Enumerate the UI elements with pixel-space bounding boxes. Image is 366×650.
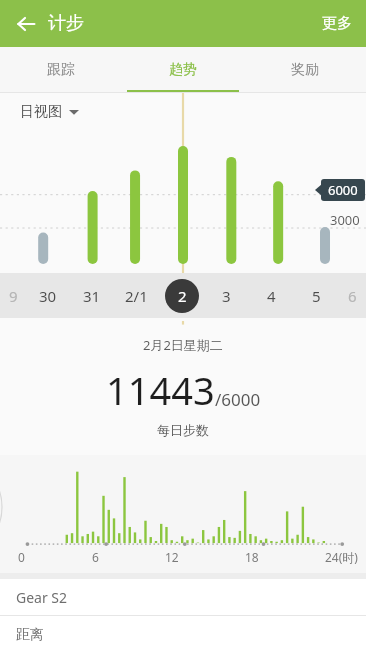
button[interactable]: 奖励 — [244, 47, 366, 93]
staticText: 跟踪 — [47, 61, 75, 79]
staticText: 计步 — [48, 12, 84, 35]
staticText: 趋势 — [169, 61, 197, 79]
staticText: 30 — [39, 286, 57, 306]
staticText: 31 — [83, 286, 101, 306]
button[interactable]: 6 — [339, 273, 366, 318]
staticText: 24(时) — [325, 549, 358, 565]
button[interactable]: 4 — [249, 273, 294, 318]
button[interactable]: 跟踪 — [0, 47, 122, 93]
staticText: 6000 — [328, 181, 358, 199]
button[interactable]: 日视图 — [20, 103, 79, 121]
button[interactable]: Back — [8, 6, 44, 42]
button[interactable]: 2 — [159, 273, 204, 318]
staticText: 3000 — [330, 211, 360, 229]
button[interactable]: 2/1 — [114, 273, 159, 318]
staticText: 9 — [9, 286, 18, 306]
button[interactable]: Gear S2 — [0, 579, 366, 615]
staticText: Gear S2 — [16, 588, 68, 607]
button[interactable]: 5 — [294, 273, 339, 318]
staticText: 每日步数 — [157, 422, 209, 438]
button[interactable]: 更多 — [308, 4, 366, 43]
staticText: 0 — [18, 549, 25, 565]
staticText: 2 — [178, 286, 187, 306]
staticText: 2月2日星期二 — [143, 336, 223, 354]
staticText: 12 — [165, 549, 179, 565]
staticText: 18 — [245, 549, 259, 565]
button[interactable]: 距离 — [0, 616, 366, 650]
staticText: 距离 — [16, 626, 44, 644]
button[interactable]: 趋势 — [122, 47, 244, 93]
staticText: 日视图 — [20, 103, 62, 121]
staticText: 4 — [267, 286, 276, 306]
staticText: 6 — [92, 549, 99, 565]
button[interactable]: 31 — [70, 273, 114, 318]
staticText: 奖励 — [291, 61, 319, 79]
staticText: /6000 — [215, 388, 261, 411]
button[interactable]: 9 — [0, 273, 26, 318]
staticText: 6 — [348, 286, 357, 306]
button[interactable]: 30 — [26, 273, 70, 318]
staticText: 2/1 — [125, 286, 148, 306]
staticText: 更多 — [322, 14, 352, 33]
button[interactable]: 3 — [204, 273, 249, 318]
staticText: 5 — [312, 286, 321, 306]
staticText: 11443 — [106, 364, 215, 416]
staticText: 3 — [222, 286, 231, 306]
